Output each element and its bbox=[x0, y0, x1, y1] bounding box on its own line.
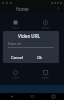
staticText: Home bbox=[16, 6, 29, 12]
button[interactable]: Label bbox=[41, 44, 50, 56]
button[interactable]: Label bbox=[11, 44, 20, 56]
staticText: Label bbox=[12, 76, 19, 80]
staticText: Label bbox=[12, 26, 19, 30]
staticText: Ok bbox=[37, 55, 42, 60]
staticText: Label bbox=[42, 76, 49, 80]
button[interactable]: Label bbox=[11, 69, 20, 81]
button[interactable]: Home bbox=[22, 93, 43, 100]
button[interactable]: Label bbox=[41, 69, 50, 81]
button[interactable]: Cancel bbox=[10, 54, 24, 61]
button[interactable]: Label bbox=[11, 19, 20, 31]
button[interactable]: Back bbox=[0, 93, 22, 100]
button[interactable]: More options bbox=[55, 5, 62, 12]
staticText: Enter url bbox=[8, 42, 21, 46]
button[interactable]: Label bbox=[41, 19, 50, 31]
staticText: Cancel bbox=[11, 55, 23, 60]
staticText: Label bbox=[42, 26, 49, 30]
button[interactable]: Ok bbox=[36, 54, 43, 61]
button[interactable]: Recent apps bbox=[43, 93, 64, 100]
staticText: Video URL bbox=[5, 33, 53, 39]
